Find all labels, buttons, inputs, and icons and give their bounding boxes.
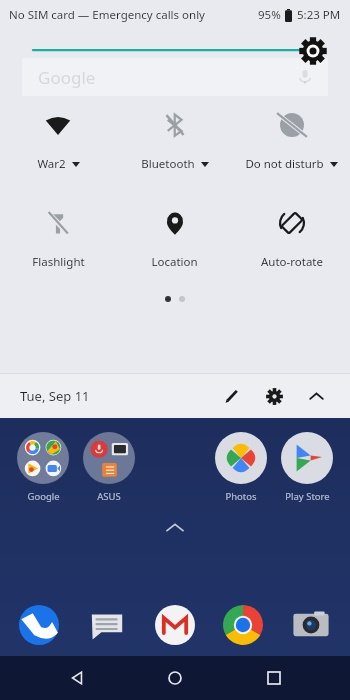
button[interactable]: Auto-rotate: [233, 208, 350, 272]
button[interactable]: Recents: [252, 656, 296, 700]
button[interactable]: Flashlight: [0, 208, 116, 272]
button[interactable]: Gmail: [150, 600, 200, 650]
staticText: Bluetooth: [141, 156, 195, 172]
button[interactable]: Wi-Fi: [0, 110, 116, 174]
button[interactable]: Google: [10, 432, 76, 503]
button[interactable]: ASUS: [76, 432, 142, 503]
button[interactable]: All apps: [167, 523, 183, 532]
other: Flashlight: [45, 210, 71, 236]
button[interactable]: Location: [116, 208, 233, 272]
other: Do not disturb: [279, 112, 305, 138]
button[interactable]: Home: [153, 656, 197, 700]
other: Auto-rotate: [279, 210, 305, 236]
button[interactable]: Collapse: [298, 378, 334, 414]
staticText: 95%: [258, 7, 281, 23]
staticText: 5:23 PM: [297, 7, 341, 23]
button[interactable]: Brightness: [300, 38, 326, 64]
staticText: Do not disturb: [245, 156, 324, 172]
staticText: No SIM card — Emergency calls only: [9, 7, 205, 23]
other: Bluetooth: [162, 112, 188, 138]
staticText: Photos: [225, 490, 257, 503]
staticText: ASUS: [97, 490, 121, 503]
staticText: War2: [37, 156, 66, 172]
button[interactable]: Camera: [286, 600, 336, 650]
staticText: Google: [27, 490, 60, 503]
button[interactable]: Bluetooth: [116, 110, 233, 174]
other: Wi-Fi: [45, 112, 71, 138]
button[interactable]: Do not disturb: [233, 110, 350, 174]
staticText: Flashlight: [32, 254, 85, 270]
button[interactable]: Edit tiles: [214, 378, 250, 414]
staticText: Tue, Sep 11: [20, 387, 90, 405]
staticText: Google: [38, 66, 96, 89]
button[interactable]: Settings: [256, 378, 292, 414]
button[interactable]: Messages: [82, 600, 132, 650]
staticText: Play Store: [285, 490, 330, 503]
staticText: Auto-rotate: [261, 254, 323, 270]
button[interactable]: Play Store: [274, 432, 340, 503]
button[interactable]: Phone: [14, 600, 64, 650]
button[interactable]: Photos: [208, 432, 274, 503]
button[interactable]: Back: [55, 656, 99, 700]
staticText: Location: [151, 254, 198, 270]
other: Location: [162, 210, 188, 236]
button[interactable]: Chrome: [218, 600, 268, 650]
